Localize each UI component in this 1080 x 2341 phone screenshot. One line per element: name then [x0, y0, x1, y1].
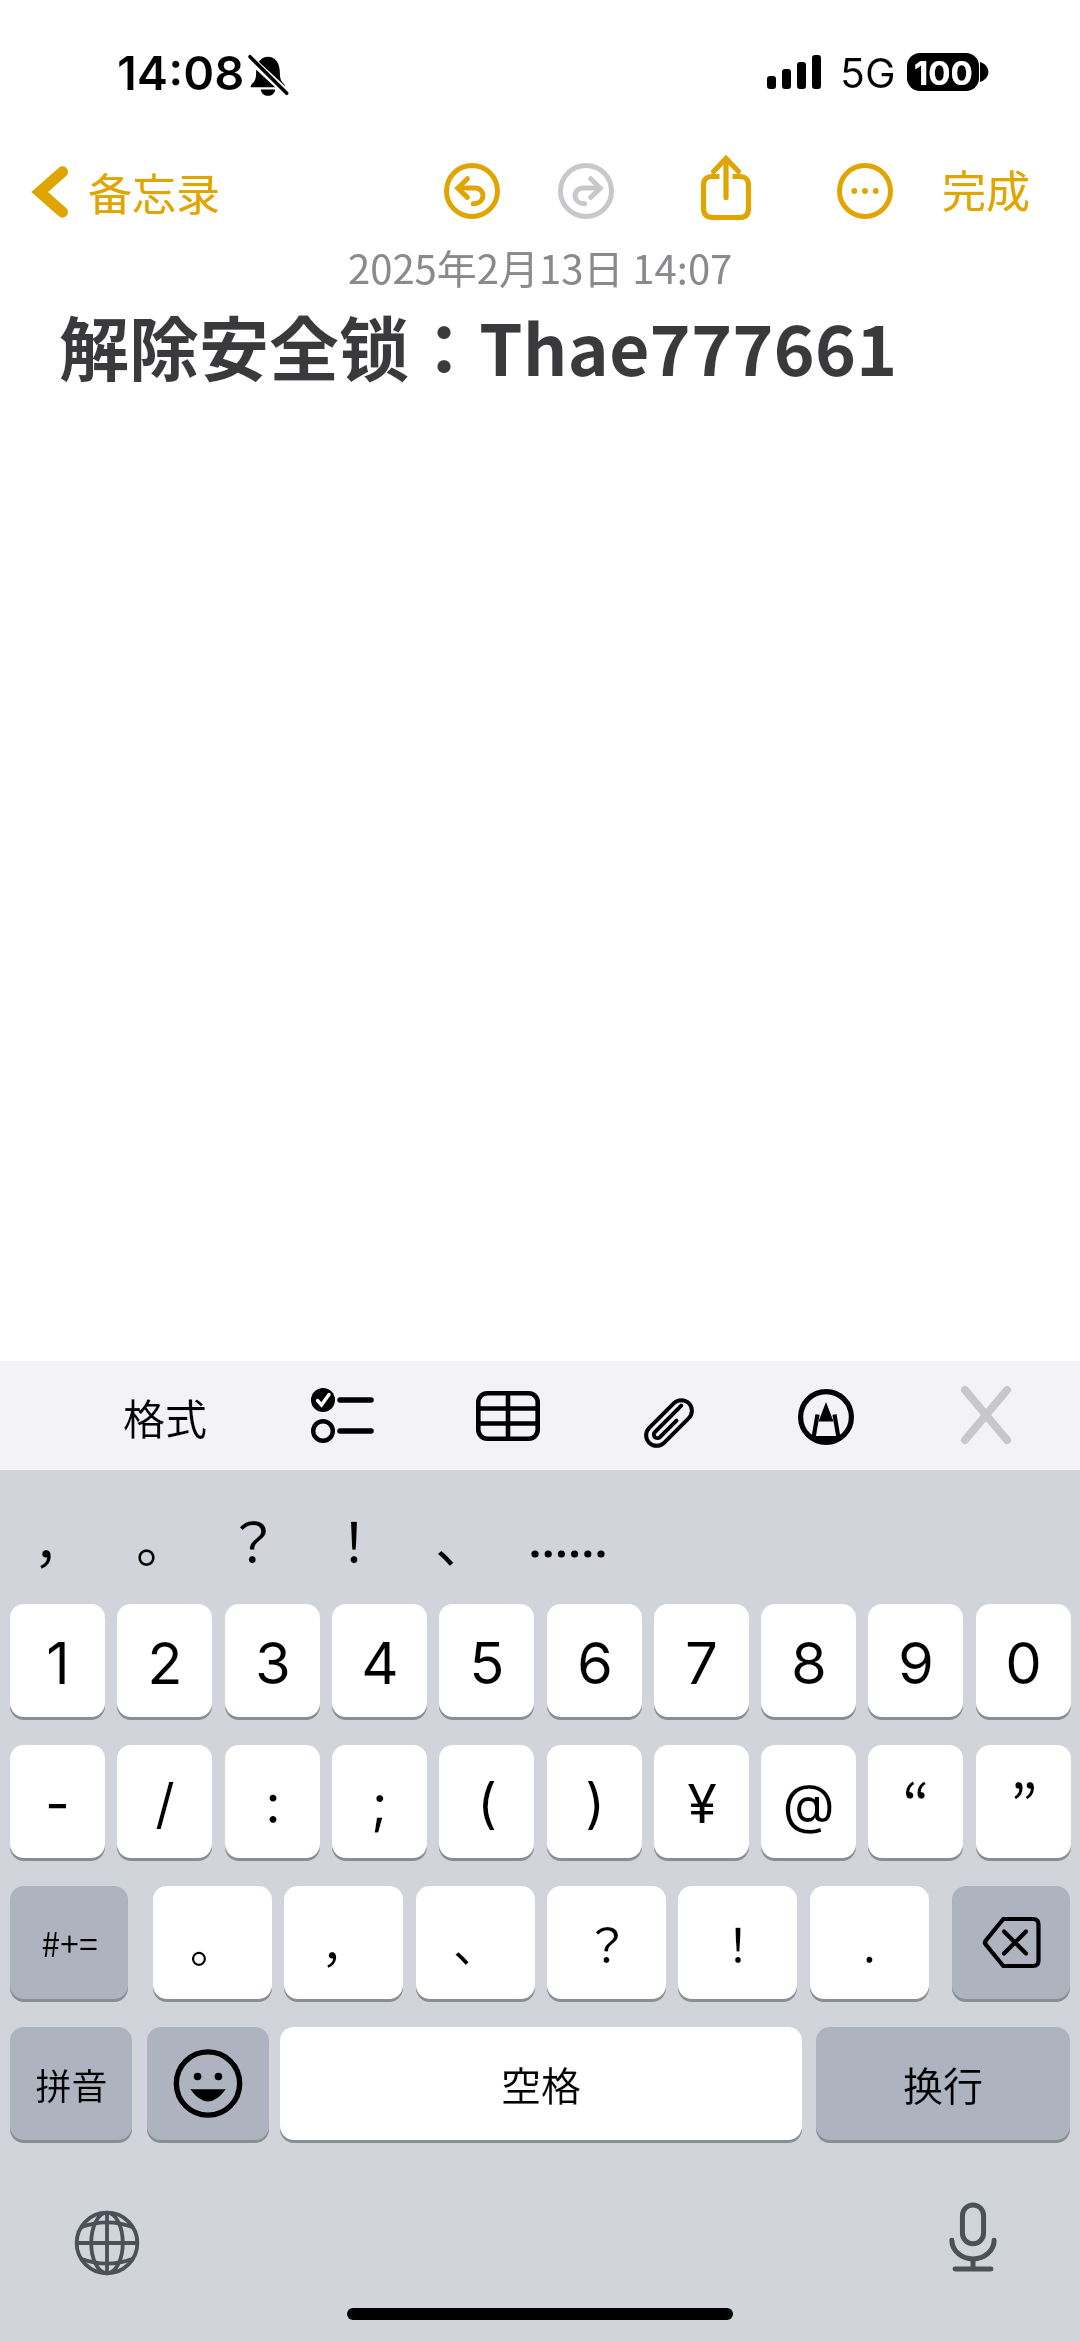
- button[interactable]: 2: [117, 1604, 212, 1717]
- staticText: ！: [327, 1500, 381, 1578]
- button[interactable]: 8: [761, 1604, 856, 1717]
- staticText: .: [863, 1909, 876, 1976]
- staticText: 、: [435, 1500, 489, 1578]
- button[interactable]: -: [10, 1745, 105, 1858]
- button[interactable]: 5: [439, 1604, 534, 1717]
- staticText: 2025年2月13日 14:07: [348, 238, 733, 296]
- button[interactable]: Redo: [558, 163, 614, 219]
- staticText: 2: [147, 1628, 183, 1698]
- staticText: ”: [1010, 1760, 1038, 1844]
- button[interactable]: Emoji: [147, 2027, 269, 2140]
- staticText: 备忘录: [88, 160, 220, 224]
- staticText: 14:08: [117, 44, 245, 101]
- staticText: 、: [453, 1909, 499, 1976]
- button[interactable]: “: [868, 1745, 963, 1858]
- button[interactable]: More: [837, 163, 893, 219]
- staticText: ): [585, 1771, 605, 1836]
- staticText: ？: [226, 1500, 280, 1578]
- button[interactable]: 9: [868, 1604, 963, 1717]
- staticText: 1: [46, 1628, 70, 1698]
- button[interactable]: 、: [412, 1494, 512, 1584]
- button[interactable]: 1: [10, 1604, 105, 1717]
- button[interactable]: ？: [547, 1886, 666, 1999]
- staticText: 9: [898, 1628, 934, 1698]
- button[interactable]: ): [547, 1745, 642, 1858]
- staticText: 空格: [501, 2055, 581, 2113]
- button[interactable]: (: [439, 1745, 534, 1858]
- button[interactable]: @: [761, 1745, 856, 1858]
- staticText: 6: [577, 1628, 613, 1698]
- staticText: (: [477, 1771, 497, 1836]
- staticText: ;: [371, 1771, 388, 1836]
- staticText: 3: [255, 1628, 291, 1698]
- staticText: 8: [791, 1628, 827, 1698]
- button[interactable]: Ellipsis: [516, 1494, 616, 1584]
- button[interactable]: Undo: [444, 163, 500, 219]
- staticText: “: [902, 1760, 930, 1844]
- button[interactable]: ，: [10, 1494, 110, 1584]
- button[interactable]: Table: [476, 1391, 540, 1441]
- staticText: 5G: [840, 48, 896, 98]
- button[interactable]: 7: [654, 1604, 749, 1717]
- staticText: 。: [190, 1909, 236, 1976]
- staticText: -: [45, 1771, 70, 1836]
- button[interactable]: 0: [976, 1604, 1071, 1717]
- button[interactable]: .: [810, 1886, 929, 1999]
- staticText: 完成: [942, 157, 1030, 221]
- staticText: 7: [685, 1628, 718, 1698]
- button[interactable]: ;: [332, 1745, 427, 1858]
- button[interactable]: 。: [113, 1494, 213, 1584]
- button[interactable]: Markup: [798, 1389, 854, 1445]
- button[interactable]: Backspace: [952, 1886, 1070, 1999]
- button[interactable]: /: [117, 1745, 212, 1858]
- button[interactable]: 。: [153, 1886, 272, 1999]
- staticText: ！: [715, 1909, 761, 1976]
- staticText: ，: [33, 1500, 87, 1578]
- button[interactable]: ？: [203, 1494, 303, 1584]
- staticText: ¥: [687, 1771, 717, 1836]
- staticText: 0: [1005, 1628, 1042, 1698]
- staticText: 5: [469, 1628, 505, 1698]
- staticText: 。: [136, 1500, 190, 1578]
- button[interactable]: 3: [225, 1604, 320, 1717]
- staticText: ？: [584, 1909, 630, 1976]
- button[interactable]: ”: [976, 1745, 1071, 1858]
- button[interactable]: ！: [678, 1886, 797, 1999]
- button[interactable]: Checklist: [311, 1388, 374, 1446]
- button[interactable]: 完成: [942, 149, 1030, 229]
- button[interactable]: 格式: [114, 1381, 216, 1451]
- button[interactable]: 拼音: [10, 2027, 132, 2140]
- button[interactable]: Dictation: [941, 2202, 1005, 2274]
- button[interactable]: Close: [962, 1387, 1010, 1443]
- button[interactable]: 备忘录: [28, 152, 220, 232]
- button[interactable]: :: [225, 1745, 320, 1858]
- staticText: 换行: [903, 2055, 983, 2113]
- button[interactable]: 、: [416, 1886, 535, 1999]
- staticText: @: [782, 1771, 835, 1836]
- staticText: :: [265, 1771, 281, 1836]
- staticText: ，: [321, 1909, 367, 1976]
- button[interactable]: Attach file: [643, 1394, 695, 1452]
- button[interactable]: Switch keyboard: [74, 2210, 140, 2276]
- button[interactable]: #+=: [10, 1886, 128, 1999]
- staticText: 解除安全锁：Thae777661: [59, 295, 898, 396]
- staticText: 100: [914, 53, 973, 91]
- button[interactable]: 6: [547, 1604, 642, 1717]
- staticText: /: [155, 1771, 175, 1836]
- button[interactable]: ¥: [654, 1745, 749, 1858]
- staticText: 拼音: [35, 2058, 108, 2110]
- button[interactable]: 4: [332, 1604, 427, 1717]
- button[interactable]: 空格: [280, 2027, 802, 2140]
- button[interactable]: Share: [698, 152, 754, 224]
- button[interactable]: ！: [304, 1494, 404, 1584]
- staticText: 4: [361, 1628, 399, 1698]
- button[interactable]: 换行: [816, 2027, 1070, 2140]
- button[interactable]: ，: [284, 1886, 403, 1999]
- staticText: 格式: [123, 1386, 208, 1447]
- staticText: #+=: [41, 1918, 98, 1967]
